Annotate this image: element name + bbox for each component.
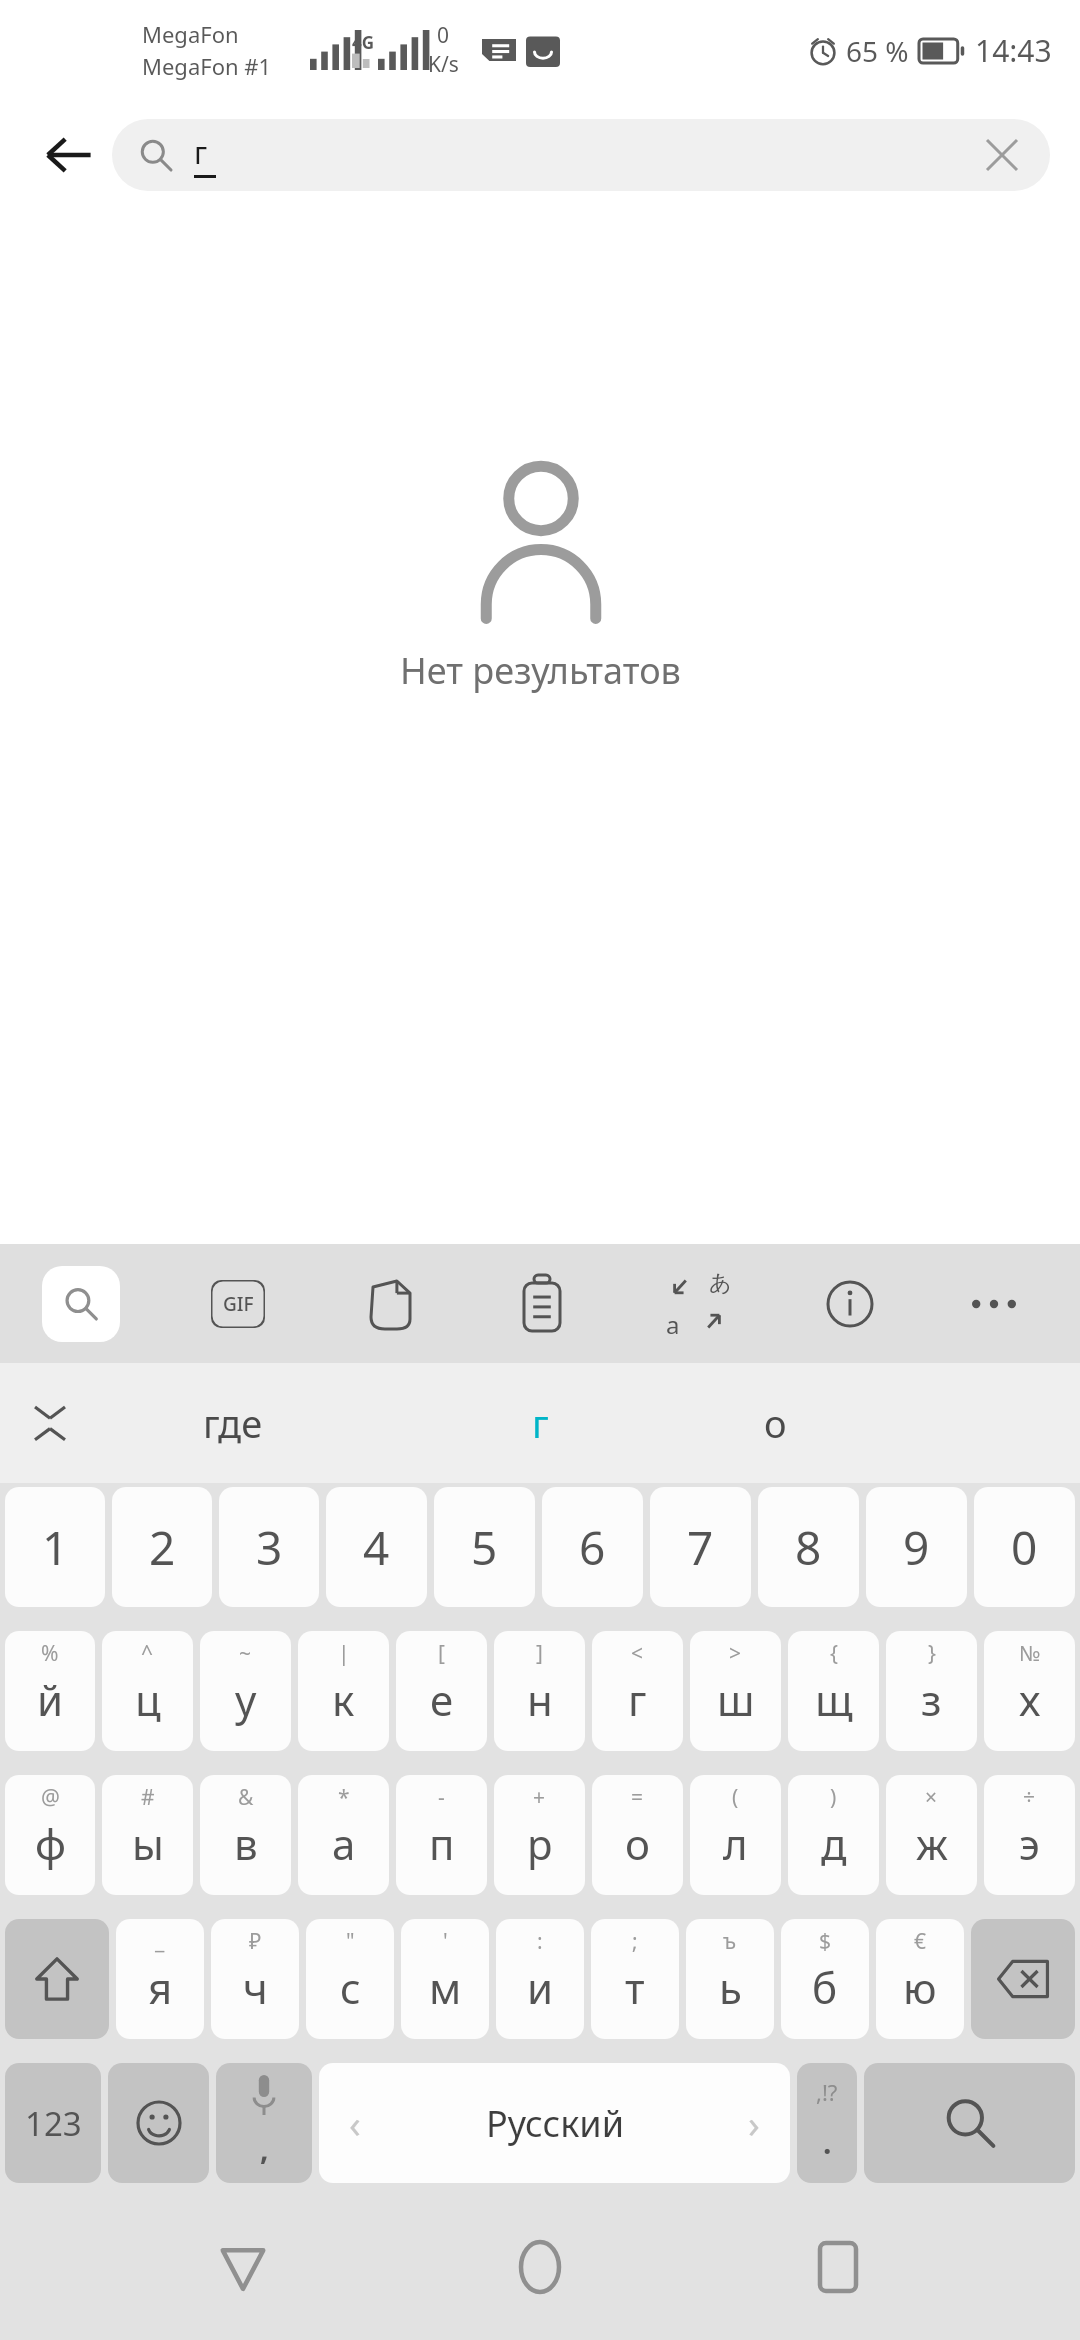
button[interactable]: 9 (866, 1487, 967, 1607)
button[interactable]: Info (812, 1266, 888, 1342)
button[interactable]: ; (591, 1919, 679, 2039)
staticText: > (729, 1639, 742, 1668)
button[interactable]: Home (485, 2212, 595, 2322)
button[interactable]: GIF (200, 1266, 276, 1342)
button[interactable]: Backspace (971, 1919, 1075, 2039)
staticText: › (748, 2097, 760, 2149)
button[interactable]: Translate (656, 1263, 738, 1345)
button[interactable]: = (592, 1775, 683, 1895)
button[interactable]: 8 (758, 1487, 859, 1607)
button[interactable]: Русский (319, 2063, 790, 2183)
button[interactable]: 3 (219, 1487, 319, 1607)
button[interactable]: Expand suggestions (12, 1385, 88, 1461)
button[interactable]: 1 (5, 1487, 105, 1607)
button[interactable]: € (876, 1919, 964, 2039)
button[interactable]: + (494, 1775, 585, 1895)
staticText: я (148, 1959, 173, 2016)
staticText: к (332, 1671, 355, 1728)
staticText: K/s (428, 50, 459, 79)
button[interactable]: { (788, 1631, 879, 1751)
staticText: и (527, 1959, 554, 2016)
staticText: 7 (687, 1516, 714, 1579)
button[interactable]: [ (396, 1631, 487, 1751)
button[interactable]: ( (690, 1775, 781, 1895)
staticText: ) (830, 1783, 837, 1812)
button[interactable]: 5 (434, 1487, 535, 1607)
staticText: № (1019, 1639, 1041, 1668)
button[interactable]: Search mode (42, 1266, 120, 1342)
staticText: [ (438, 1639, 445, 1668)
staticText: GIF (223, 1291, 254, 1317)
staticText: ,!? (816, 2077, 838, 2107)
staticText: | (338, 1639, 350, 1668)
button[interactable]: г (415, 1363, 665, 1483)
button[interactable]: ÷ (984, 1775, 1075, 1895)
button[interactable]: } (886, 1631, 977, 1751)
staticText: ] (536, 1639, 543, 1668)
button[interactable]: Shift (5, 1919, 109, 2039)
button[interactable]: Clipboard (504, 1266, 580, 1342)
button[interactable]: Voice input (216, 2063, 312, 2183)
staticText: в (234, 1815, 258, 1872)
staticText: _ (155, 1927, 165, 1956)
button[interactable]: 0 (974, 1487, 1075, 1607)
button[interactable]: ) (788, 1775, 879, 1895)
button[interactable]: о (650, 1363, 900, 1483)
button[interactable]: × (886, 1775, 977, 1895)
staticText: $ (819, 1927, 832, 1956)
staticText: м (429, 1959, 462, 2016)
staticText: あ (709, 1269, 732, 1297)
button[interactable]: 7 (650, 1487, 751, 1607)
button[interactable]: - (396, 1775, 487, 1895)
staticText: г (532, 1397, 549, 1449)
staticText: 5 (471, 1516, 498, 1579)
button[interactable]: Back (188, 2212, 298, 2322)
button[interactable]: < (592, 1631, 683, 1751)
button[interactable]: 6 (542, 1487, 643, 1607)
staticText: т (625, 1959, 645, 2016)
button[interactable]: г (112, 119, 1050, 191)
button[interactable]: > (690, 1631, 781, 1751)
button[interactable]: 2 (112, 1487, 212, 1607)
staticText: 14:43 (975, 30, 1052, 71)
staticText: Нет результатов (400, 646, 681, 695)
staticText: д (821, 1815, 847, 1872)
button[interactable]: ^ (102, 1631, 193, 1751)
button[interactable]: 123 (5, 2063, 101, 2183)
button[interactable]: # (102, 1775, 193, 1895)
staticText: щ (815, 1671, 853, 1728)
button[interactable]: 4 (326, 1487, 427, 1607)
button[interactable]: @ (5, 1775, 95, 1895)
button[interactable]: " (306, 1919, 394, 2039)
button[interactable]: ₽ (211, 1919, 299, 2039)
staticText: а (332, 1815, 356, 1872)
button[interactable]: & (200, 1775, 291, 1895)
button[interactable]: _ (116, 1919, 204, 2039)
button[interactable]: $ (781, 1919, 869, 2039)
staticText: г (194, 132, 208, 173)
button[interactable]: ,!? (797, 2063, 857, 2183)
staticText: г (628, 1671, 647, 1728)
staticText: 1 (42, 1516, 69, 1579)
button[interactable]: More options (956, 1266, 1032, 1342)
button[interactable]: Search (864, 2063, 1075, 2183)
button[interactable]: ] (494, 1631, 585, 1751)
button[interactable]: Clear (974, 127, 1030, 183)
button[interactable]: ' (401, 1919, 489, 2039)
button[interactable]: Back (34, 120, 104, 190)
button[interactable]: | (298, 1631, 389, 1751)
staticText: где (203, 1397, 263, 1449)
button[interactable]: Stickers (352, 1266, 428, 1342)
staticText: ' (443, 1927, 448, 1956)
button[interactable]: ~ (200, 1631, 291, 1751)
button[interactable]: ъ (686, 1919, 774, 2039)
button[interactable]: % (5, 1631, 95, 1751)
button[interactable]: где (108, 1363, 358, 1483)
button[interactable]: № (984, 1631, 1075, 1751)
button[interactable]: Recent apps (783, 2212, 893, 2322)
staticText: л (723, 1815, 748, 1872)
staticText: # (141, 1783, 155, 1812)
button[interactable]: Emoji (108, 2063, 209, 2183)
button[interactable]: * (298, 1775, 389, 1895)
button[interactable]: : (496, 1919, 584, 2039)
